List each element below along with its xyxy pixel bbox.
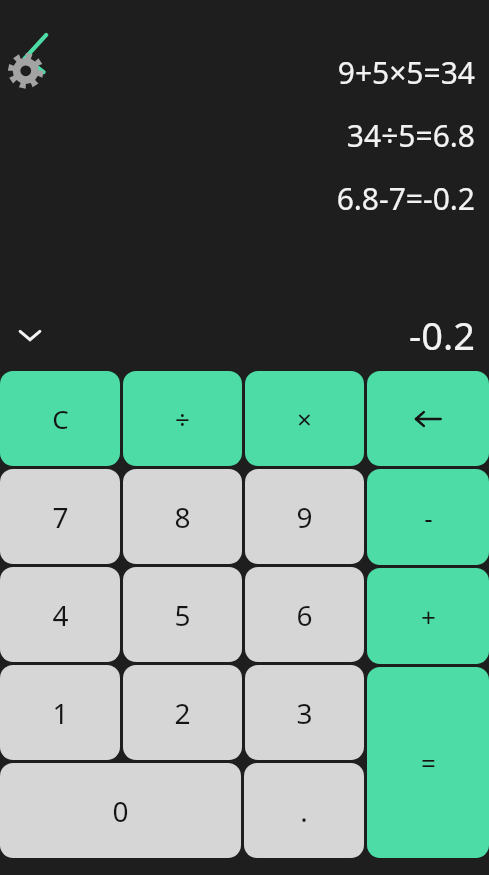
staticText: 7: [52, 498, 69, 536]
button[interactable]: 8: [123, 469, 242, 564]
button[interactable]: 3: [245, 665, 364, 760]
staticText: 2: [174, 694, 191, 732]
staticText: =: [421, 745, 436, 780]
staticText: ÷: [175, 401, 190, 436]
button[interactable]: 7: [0, 469, 120, 564]
button[interactable]: 4: [0, 567, 120, 662]
button[interactable]: 0: [0, 763, 241, 858]
staticText: 9: [296, 498, 313, 536]
staticText: 34÷5=6.8: [346, 115, 475, 156]
button[interactable]: 1: [0, 665, 120, 760]
staticText: 4: [52, 596, 69, 634]
button[interactable]: 9: [245, 469, 364, 564]
staticText: C: [52, 401, 69, 436]
button[interactable]: =: [367, 667, 489, 858]
button[interactable]: +: [367, 568, 489, 664]
button[interactable]: ÷: [123, 371, 242, 466]
staticText: -0.2: [409, 309, 475, 361]
staticText: 0: [112, 792, 129, 830]
staticText: 6.8-7=-0.2: [336, 178, 475, 219]
staticText: 6: [296, 596, 313, 634]
button[interactable]: Expand history: [8, 313, 52, 357]
button[interactable]: ×: [245, 371, 364, 466]
staticText: +: [421, 599, 436, 634]
staticText: 1: [52, 694, 69, 732]
button[interactable]: C: [0, 371, 120, 466]
staticText: ×: [297, 401, 312, 436]
staticText: .: [300, 792, 308, 830]
staticText: 9+5×5=34: [337, 52, 475, 93]
button[interactable]: Settings: [4, 26, 68, 90]
staticText: 3: [296, 694, 313, 732]
button[interactable]: 2: [123, 665, 242, 760]
button[interactable]: 5: [123, 567, 242, 662]
staticText: 5: [174, 596, 191, 634]
button[interactable]: -: [367, 469, 489, 565]
button[interactable]: Backspace: [367, 371, 489, 466]
staticText: -: [424, 500, 433, 535]
button[interactable]: .: [244, 763, 364, 858]
staticText: 8: [174, 498, 191, 536]
button[interactable]: 6: [245, 567, 364, 662]
